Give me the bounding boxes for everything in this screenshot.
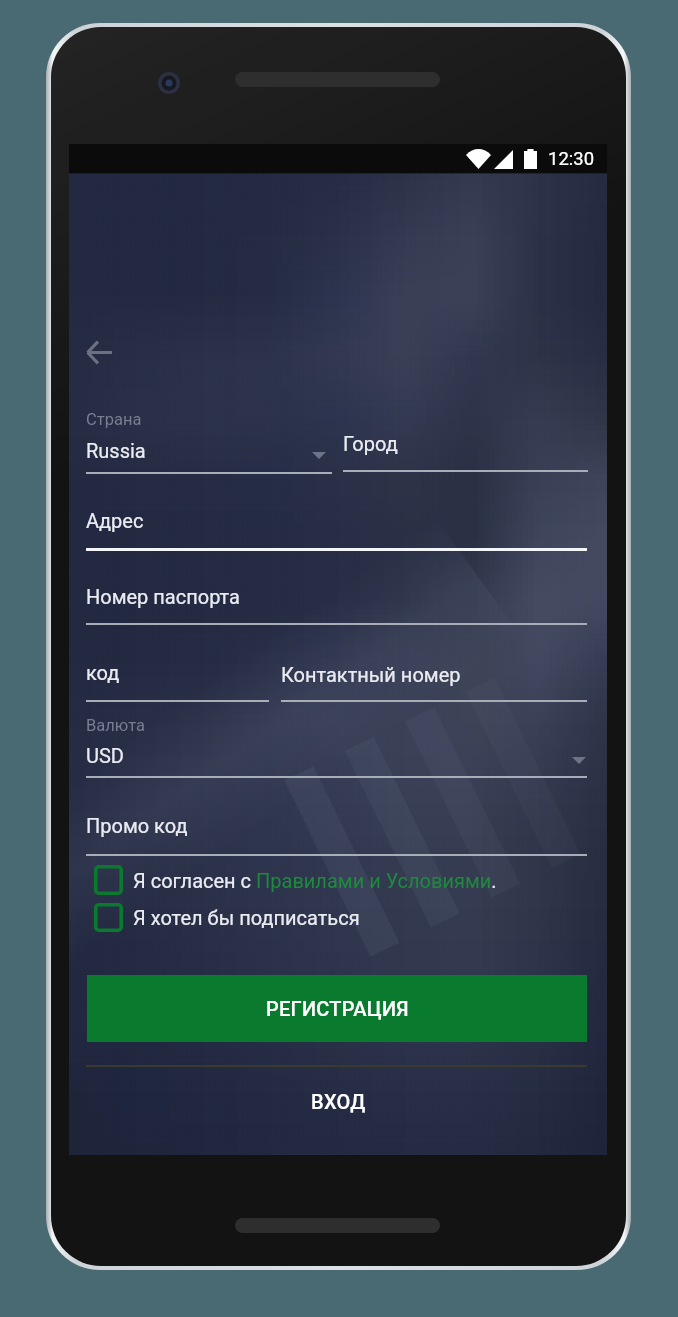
button[interactable]: РЕГИСТРАЦИЯ: [87, 975, 587, 1042]
button[interactable]: Страна: [86, 406, 332, 479]
button[interactable]: Адрес: [86, 502, 587, 556]
button[interactable]: ВХОД: [69, 1066, 607, 1144]
button[interactable]: Номер паспорта: [86, 579, 587, 630]
staticText: Адрес: [86, 509, 144, 532]
staticText: Город: [343, 432, 398, 455]
button[interactable]: Контактный номер: [281, 657, 587, 707]
staticText: Контактный номер: [281, 663, 461, 686]
button[interactable]: Я хотел бы подписаться: [94, 903, 360, 932]
button[interactable]: Back: [73, 326, 125, 378]
staticText: Валюта: [86, 716, 146, 735]
staticText: РЕГИСТРАЦИЯ: [266, 997, 409, 1020]
staticText: 12:30: [548, 148, 595, 170]
button[interactable]: Промо код: [86, 808, 587, 861]
button[interactable]: Валюта: [86, 713, 587, 783]
button[interactable]: код: [86, 654, 269, 707]
staticText: ВХОД: [311, 1090, 366, 1113]
button[interactable]: Город: [343, 426, 588, 476]
button[interactable]: Я согласен с Правилами и Условиями.: [94, 865, 497, 895]
staticText: код: [86, 661, 120, 684]
staticText: Номер паспорта: [86, 585, 240, 608]
staticText: Страна: [86, 410, 142, 429]
staticText: Russia: [86, 439, 146, 462]
staticText: Я согласен с Правилами и Условиями.: [133, 869, 497, 892]
staticText: USD: [86, 744, 124, 767]
staticText: Промо код: [86, 814, 188, 837]
staticText: Я хотел бы подписаться: [133, 906, 360, 929]
